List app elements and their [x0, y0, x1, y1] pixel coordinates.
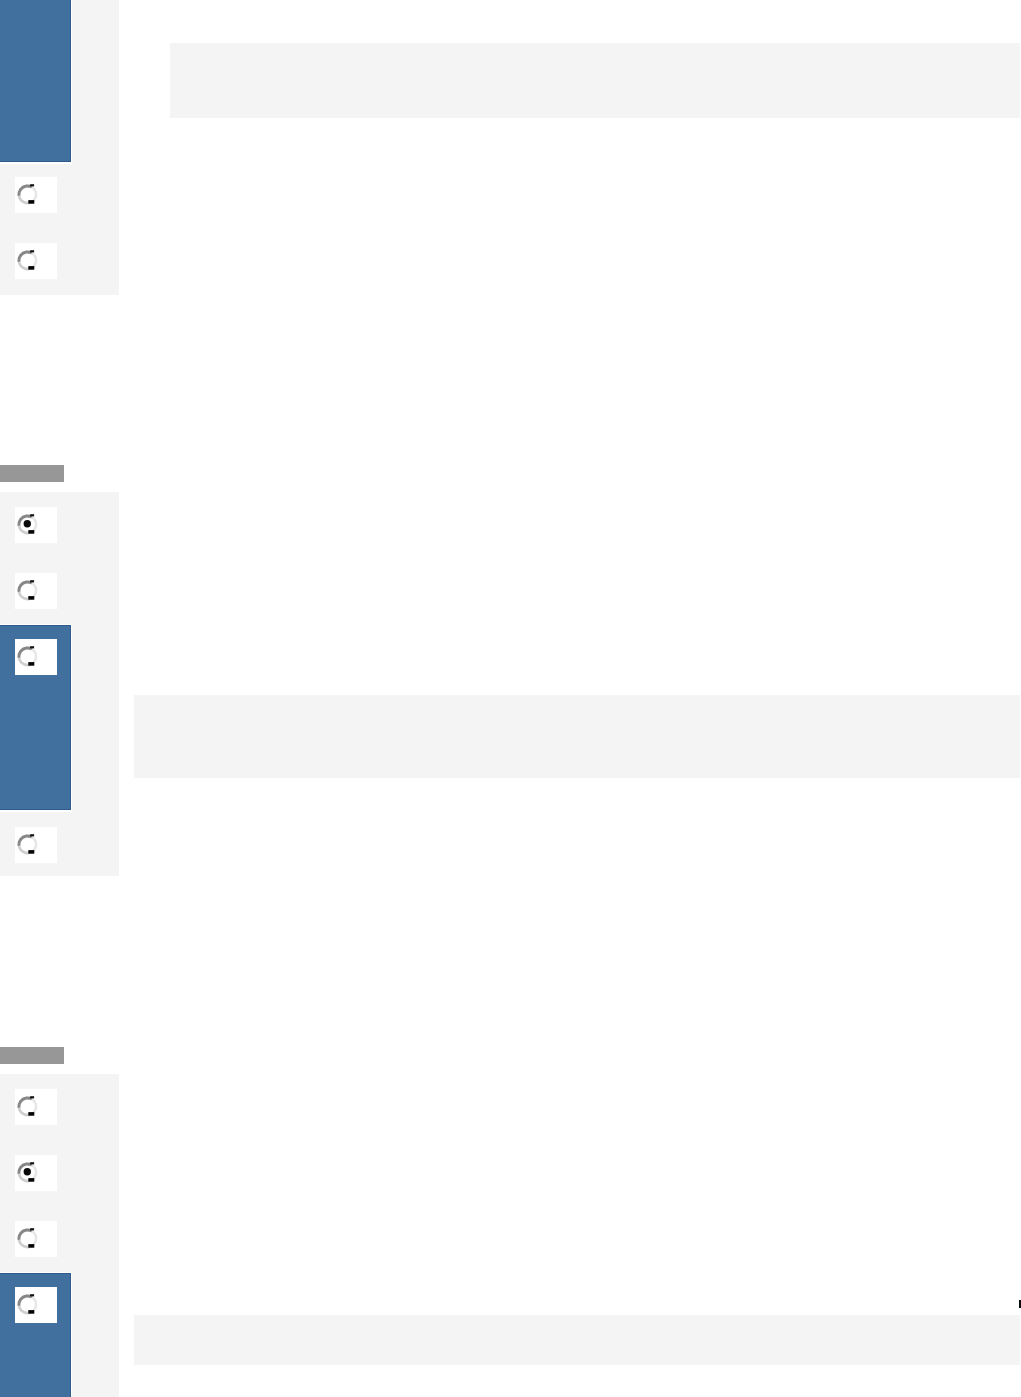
button[interactable]: Item 3 [0, 1206, 119, 1272]
button[interactable]: Item 1 [0, 1074, 119, 1140]
button[interactable]: Choice B [0, 558, 119, 624]
button[interactable]: Selected option [0, 0, 72, 164]
button[interactable]: Option 3 [0, 228, 119, 294]
button[interactable]: Choice D [0, 812, 119, 876]
button[interactable]: Item 2 [0, 1140, 119, 1206]
button[interactable]: Item 4 [0, 1272, 119, 1397]
button[interactable]: Choice C [0, 624, 119, 812]
button[interactable]: Option 2 [0, 162, 119, 228]
button[interactable]: Choice A [0, 492, 119, 558]
